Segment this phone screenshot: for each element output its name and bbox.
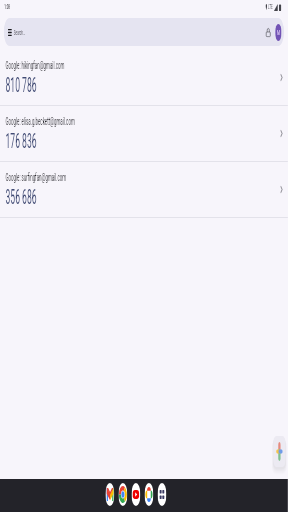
button[interactable]: Google: elisa.g.beckett@gmail.com <box>0 106 288 162</box>
button[interactable]: Account <box>275 24 281 41</box>
button[interactable]: Google: surfingfan@gmail.com <box>0 162 288 218</box>
staticText: Search... <box>14 29 26 37</box>
other: Privacy <box>266 28 271 37</box>
button[interactable]: YouTube <box>131 483 140 506</box>
staticText: Google: hikingfan@gmail.com <box>5 59 65 71</box>
staticText: LTE <box>268 3 273 11</box>
staticText: 356 686 <box>5 185 37 209</box>
button[interactable]: Google: hikingfan@gmail.com <box>0 50 288 106</box>
button[interactable]: Calculator <box>158 483 166 506</box>
staticText: 810 786 <box>5 73 37 97</box>
staticText: 1:08 <box>4 3 10 11</box>
staticText: Google: elisa.g.beckett@gmail.com <box>5 115 75 127</box>
button[interactable]: Menu <box>4 18 284 46</box>
staticText: M <box>277 28 280 37</box>
button[interactable]: Photos <box>144 483 153 506</box>
button[interactable]: Chrome <box>118 483 127 506</box>
other: Menu <box>8 29 12 36</box>
button[interactable]: Add account <box>273 436 286 467</box>
staticText: 176 836 <box>5 129 37 153</box>
staticText: Google: surfingfan@gmail.com <box>5 171 66 183</box>
button[interactable]: Gmail <box>105 483 114 506</box>
